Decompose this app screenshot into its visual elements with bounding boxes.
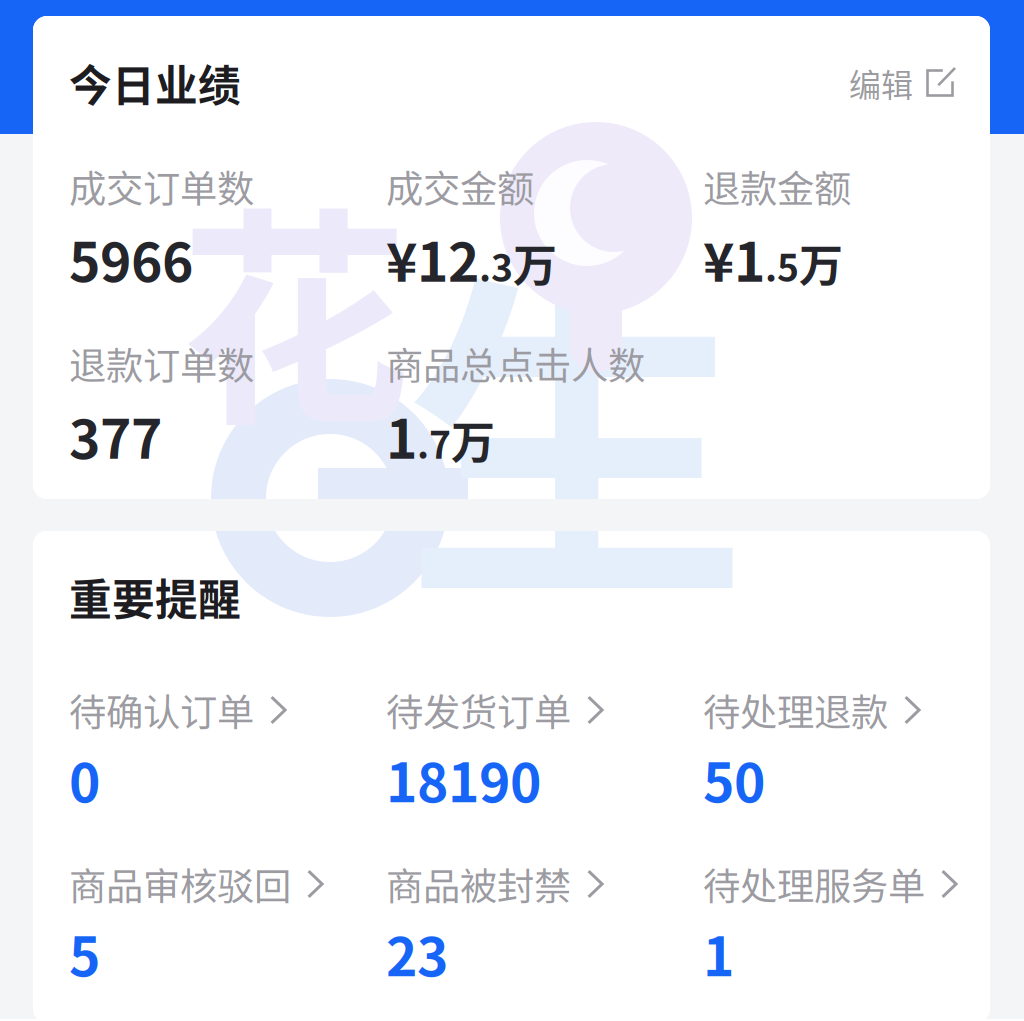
- staticText: 万: [451, 408, 495, 471]
- staticText: 万: [799, 231, 843, 294]
- staticText: 23: [386, 914, 448, 992]
- staticText: 5966: [69, 220, 193, 297]
- staticText: 商品总点击人数: [386, 336, 645, 391]
- staticText: ¥1: [703, 220, 765, 297]
- staticText: 0: [69, 740, 100, 818]
- staticText: 商品审核驳回: [69, 857, 291, 911]
- staticText: 待处理服务单: [703, 857, 925, 911]
- button[interactable]: 待发货订单: [386, 691, 694, 801]
- button[interactable]: 编辑: [849, 60, 954, 106]
- staticText: 退款金额: [703, 159, 851, 214]
- staticText: 成交金额: [386, 159, 534, 214]
- staticText: 18190: [386, 740, 541, 818]
- button[interactable]: 待处理服务单: [703, 865, 1011, 975]
- staticText: 1: [703, 914, 734, 992]
- staticText: 今日业绩: [69, 52, 241, 114]
- staticText: 1: [386, 397, 417, 474]
- staticText: 5: [69, 914, 100, 992]
- staticText: .3: [479, 238, 513, 292]
- staticText: 377: [69, 397, 162, 474]
- staticText: 待发货订单: [386, 683, 571, 737]
- staticText: 50: [703, 740, 765, 818]
- staticText: 退款订单数: [69, 336, 254, 391]
- staticText: 成交订单数: [69, 159, 254, 214]
- button[interactable]: 待确认订单: [69, 691, 377, 801]
- staticText: 编辑: [849, 60, 913, 106]
- staticText: 待处理退款: [703, 683, 888, 737]
- staticText: 商品被封禁: [386, 857, 571, 911]
- staticText: 生: [404, 168, 748, 666]
- staticText: 花: [180, 138, 409, 470]
- button[interactable]: 商品被封禁: [386, 865, 694, 975]
- staticText: 生: [404, 168, 748, 666]
- staticText: 万: [513, 231, 557, 294]
- staticText: 重要提醒: [69, 566, 241, 628]
- button[interactable]: 待处理退款: [703, 691, 1011, 801]
- staticText: ¥12: [386, 220, 479, 297]
- staticText: .5: [765, 238, 799, 292]
- staticText: 花: [180, 138, 409, 470]
- staticText: .7: [417, 415, 451, 469]
- staticText: 待确认订单: [69, 683, 254, 737]
- button[interactable]: 商品审核驳回: [69, 865, 377, 975]
